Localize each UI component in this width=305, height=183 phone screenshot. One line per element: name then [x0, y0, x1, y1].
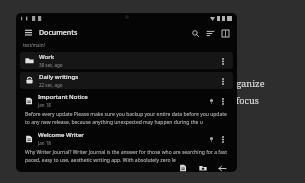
button[interactable]: Daily writings — [20, 72, 233, 89]
staticText: 22 sec. ago — [39, 82, 63, 88]
button[interactable]: More options — [218, 56, 228, 66]
button[interactable]: More options — [218, 134, 228, 144]
staticText: Welcome Writer — [38, 131, 84, 139]
staticText: Jan 18 — [38, 102, 51, 108]
staticText: Documents — [39, 28, 78, 38]
button[interactable]: Work — [20, 52, 233, 69]
staticText: Daily writings — [39, 73, 79, 81]
staticText: Important Notice — [38, 93, 88, 101]
staticText: organize — [227, 77, 265, 89]
button[interactable]: Back — [216, 164, 229, 172]
staticText: text/main/ — [23, 42, 46, 48]
staticText: Work — [39, 53, 55, 61]
staticText: Before every update Please make sure you… — [25, 111, 228, 126]
button[interactable]: Important Notice — [16, 93, 237, 126]
button[interactable]: Pin — [206, 134, 216, 144]
staticText: Jan 18 — [38, 140, 51, 146]
staticText: Why Writer Journal? Writer Journal is th… — [25, 149, 228, 164]
button[interactable]: Search — [189, 27, 201, 39]
button[interactable]: New folder — [196, 164, 209, 172]
button[interactable]: Pin — [206, 96, 216, 106]
button[interactable]: New document — [176, 164, 189, 172]
button[interactable]: Menu — [22, 26, 35, 39]
button[interactable]: View options — [219, 27, 231, 39]
staticText: 38 sec. ago — [39, 62, 63, 68]
button[interactable]: More options — [218, 76, 228, 86]
staticText: & focus — [227, 94, 259, 106]
button[interactable]: Welcome Writer — [16, 131, 237, 164]
button[interactable]: Sort — [204, 27, 216, 39]
button[interactable]: More options — [218, 96, 228, 106]
